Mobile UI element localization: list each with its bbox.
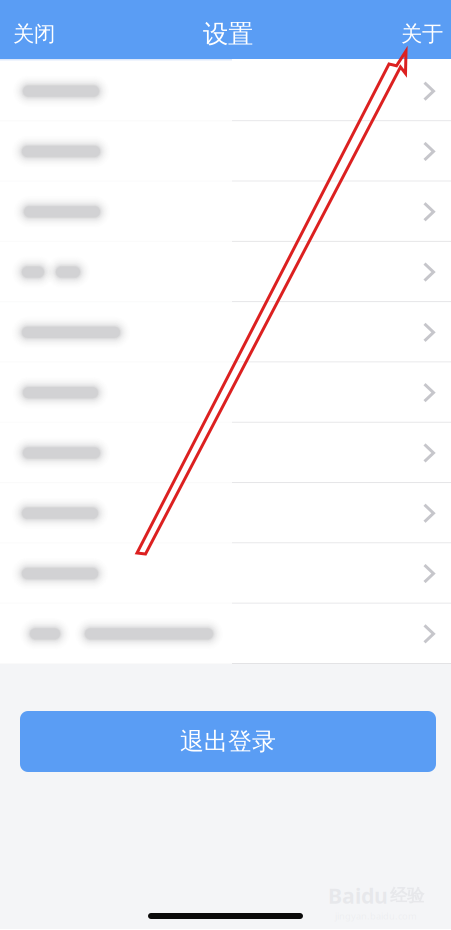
button[interactable]: Setting — [0, 182, 451, 242]
button[interactable]: Setting — [0, 604, 451, 664]
button[interactable]: 关于 — [389, 12, 451, 56]
button[interactable]: Setting — [0, 302, 451, 362]
button[interactable]: 关闭 — [0, 12, 67, 56]
button[interactable]: Setting — [0, 61, 451, 121]
button[interactable]: Setting — [0, 543, 451, 604]
staticText: 关闭 — [13, 21, 55, 47]
button[interactable]: Setting — [0, 362, 451, 423]
button[interactable]: 退出登录 — [20, 711, 436, 772]
button[interactable]: Setting — [0, 121, 451, 182]
staticText: 设置 — [203, 18, 253, 49]
staticText: 关于 — [401, 21, 443, 47]
staticText: 退出登录 — [180, 727, 276, 756]
staticText: 经验 — [390, 885, 424, 906]
staticText: Baidu — [328, 881, 388, 910]
button[interactable]: Setting — [0, 423, 451, 483]
button[interactable]: Setting — [0, 483, 451, 543]
button[interactable]: Setting — [0, 242, 451, 302]
